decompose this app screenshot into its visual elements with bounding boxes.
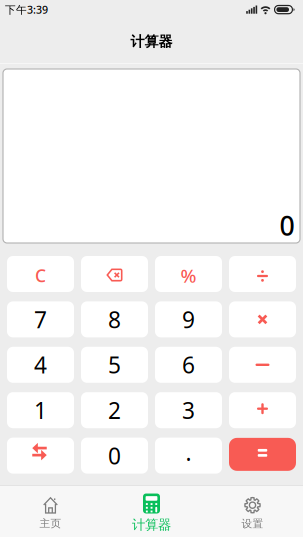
staticText: % — [180, 263, 196, 288]
staticText: 设置 — [241, 517, 263, 530]
button[interactable] — [229, 347, 296, 383]
staticText: 8 — [108, 304, 121, 334]
staticText: 5 — [108, 350, 121, 380]
button[interactable] — [229, 392, 296, 428]
button[interactable] — [229, 438, 296, 473]
button[interactable]: 7 — [7, 301, 74, 337]
staticText: 0 — [279, 208, 294, 243]
staticText: 1 — [34, 395, 47, 425]
staticText: 计算器 — [130, 33, 172, 50]
staticText: 7 — [34, 304, 47, 334]
button[interactable]: 设置 — [202, 486, 303, 537]
staticText: 0 — [108, 440, 121, 471]
button[interactable]: 1 — [7, 392, 74, 428]
button[interactable]: 9 — [155, 301, 222, 337]
button[interactable] — [81, 256, 148, 292]
staticText: 下午3:39 — [5, 2, 48, 17]
button[interactable]: % — [155, 256, 222, 292]
button[interactable]: 5 — [81, 347, 148, 383]
button[interactable]: 4 — [7, 347, 74, 383]
staticText: 9 — [182, 304, 195, 334]
button[interactable] — [229, 256, 296, 292]
staticText: . — [185, 437, 191, 467]
staticText: 计算器 — [132, 516, 171, 533]
button[interactable] — [229, 301, 296, 337]
button[interactable]: 8 — [81, 301, 148, 337]
button[interactable]: 主页 — [0, 486, 101, 537]
staticText: 2 — [108, 395, 121, 425]
button[interactable]: 3 — [155, 392, 222, 428]
staticText: 3 — [182, 395, 195, 425]
button[interactable]: 6 — [155, 347, 222, 383]
button[interactable]: C — [7, 256, 74, 292]
staticText: C — [35, 264, 46, 287]
button[interactable]: . — [155, 438, 222, 474]
button[interactable]: 计算器 — [101, 486, 202, 537]
button[interactable]: 0 — [81, 438, 148, 474]
button[interactable] — [7, 438, 74, 474]
button[interactable]: 2 — [81, 392, 148, 428]
staticText: 6 — [182, 350, 195, 380]
staticText: 4 — [34, 350, 47, 380]
staticText: 主页 — [39, 517, 61, 530]
